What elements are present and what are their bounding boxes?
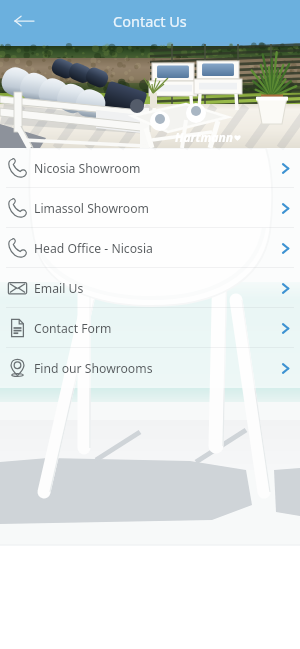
staticText: Email Us [34,280,270,297]
staticText: Nicosia Showroom [34,160,270,177]
staticText: Find our Showrooms [34,360,270,377]
button[interactable]: Head Office - Nicosia [0,228,300,268]
staticText: Hartmann [175,129,233,145]
button[interactable]: Find our Showrooms [0,348,300,388]
button[interactable]: Limassol Showroom [0,188,300,228]
button[interactable]: Back [6,3,42,39]
staticText: Contact Form [34,320,270,337]
staticText: Head Office - Nicosia [34,240,270,257]
staticText: Contact Us [113,11,187,31]
button[interactable]: Email Us [0,268,300,308]
button[interactable]: Contact Form [0,308,300,348]
staticText: Limassol Showroom [34,200,270,217]
button[interactable]: Nicosia Showroom [0,148,300,188]
